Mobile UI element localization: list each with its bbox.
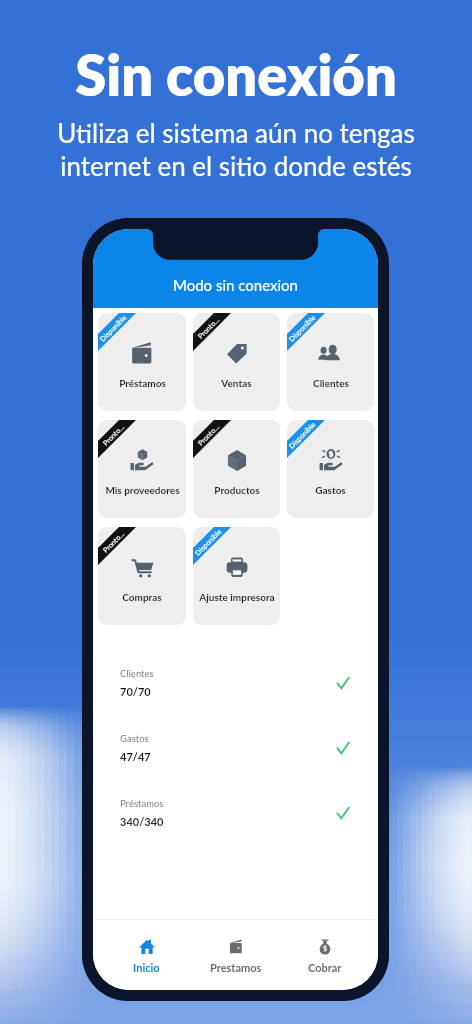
staticText: Ventas <box>221 377 252 389</box>
button[interactable]: Prestamos <box>191 938 280 974</box>
button[interactable]: Mis proveedores <box>98 420 186 518</box>
staticText: Clientes <box>313 377 349 389</box>
staticText: Préstamos <box>120 798 164 809</box>
button[interactable]: Gastos <box>287 420 374 518</box>
staticText: Gastos <box>120 733 149 744</box>
staticText: Pronto... <box>101 422 126 448</box>
staticText: 47/47 <box>120 750 151 763</box>
staticText: 70/70 <box>120 685 151 698</box>
button[interactable]: Gastos <box>108 720 362 776</box>
button[interactable]: Inicio <box>102 938 191 974</box>
staticText: Sin conexión <box>75 41 397 108</box>
button[interactable]: Productos <box>193 420 280 518</box>
staticText: Ajuste impresora <box>199 591 275 603</box>
staticText: Préstamos <box>119 377 166 389</box>
staticText: Clientes <box>120 668 154 679</box>
staticText: Disponible <box>98 313 129 344</box>
staticText: Utiliza el sistema aún no tengas interne… <box>57 117 415 182</box>
staticText: 340/340 <box>120 815 164 828</box>
staticText: Productos <box>214 484 260 496</box>
button[interactable]: Préstamos <box>108 785 362 841</box>
staticText: Prestamos <box>210 961 262 974</box>
button[interactable]: Compras <box>98 527 186 625</box>
staticText: Compras <box>122 591 162 603</box>
staticText: Disponible <box>287 313 318 344</box>
staticText: Cobrar <box>308 961 342 974</box>
button[interactable]: Préstamos <box>98 313 186 411</box>
staticText: Pronto... <box>196 315 221 341</box>
button[interactable]: Cobrar <box>280 938 369 974</box>
staticText: Modo sin conexion <box>173 276 298 294</box>
staticText: Pronto... <box>101 529 126 555</box>
button[interactable]: Clientes <box>287 313 374 411</box>
staticText: Inicio <box>133 961 160 974</box>
button[interactable]: Ventas <box>193 313 280 411</box>
staticText: Disponible <box>287 420 318 451</box>
staticText: Gastos <box>315 484 346 496</box>
staticText: Mis proveedores <box>105 484 180 496</box>
staticText: Disponible <box>193 527 224 558</box>
button[interactable]: Clientes <box>108 655 362 711</box>
staticText: Pronto... <box>196 422 221 448</box>
button[interactable]: Ajuste impresora <box>193 527 280 625</box>
